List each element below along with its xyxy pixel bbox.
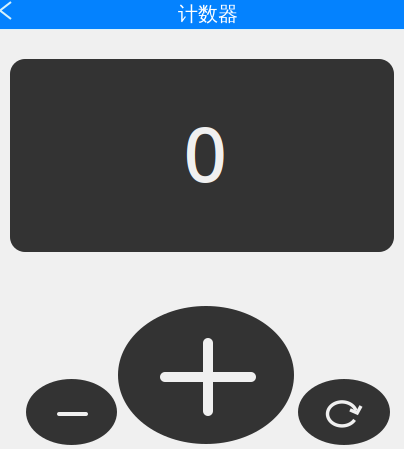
button[interactable]: Decrement <box>26 379 117 445</box>
button[interactable]: Increment <box>118 306 294 444</box>
staticText: 计数器 <box>178 2 238 26</box>
button[interactable]: Reset <box>298 379 390 445</box>
button[interactable]: Back <box>0 0 11 19</box>
staticText: 0 <box>183 102 226 203</box>
